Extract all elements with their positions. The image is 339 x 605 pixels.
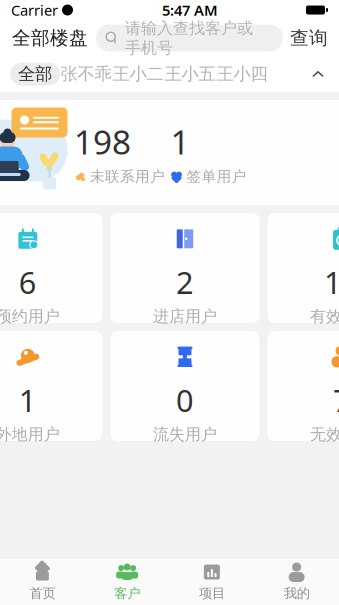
staticText: 无效用户 xyxy=(310,424,339,444)
staticText: 未联系用户 xyxy=(90,168,165,186)
button[interactable]: 请输入查找客户或手机号 xyxy=(96,24,283,51)
staticText: 1 xyxy=(19,380,37,420)
staticText: Carrier xyxy=(11,0,58,20)
staticText: 1 xyxy=(170,119,189,164)
staticText: 198 xyxy=(74,119,131,164)
staticText: 请输入查找客户或手机号 xyxy=(125,18,253,58)
button[interactable]: 查询 xyxy=(283,21,335,55)
button[interactable]: 我的 xyxy=(254,559,339,605)
button[interactable]: 全部 xyxy=(10,62,60,85)
staticText: 我的 xyxy=(284,585,310,601)
button[interactable]: 全部楼盘 xyxy=(4,21,96,55)
staticText: 王小四 xyxy=(216,63,267,85)
staticText: 全部楼盘 xyxy=(12,26,88,49)
staticText: 客户 xyxy=(114,585,140,601)
button[interactable]: 王小二 xyxy=(112,62,164,85)
button[interactable]: 19 xyxy=(267,213,339,323)
staticText: 全部 xyxy=(18,63,52,85)
button[interactable]: 7 xyxy=(267,331,339,441)
button[interactable]: 1 xyxy=(0,331,102,441)
button[interactable]: 2 xyxy=(110,213,259,323)
staticText: 签单用户 xyxy=(186,168,246,186)
button[interactable]: 6 xyxy=(0,213,102,323)
staticText: 张不乖 xyxy=(60,63,111,85)
staticText: 项目 xyxy=(199,585,225,601)
staticText: 0 xyxy=(176,380,194,420)
button[interactable]: 0 xyxy=(110,331,259,441)
staticText: 流失用户 xyxy=(153,424,217,444)
staticText: 7 xyxy=(333,380,339,420)
button[interactable]: 客户 xyxy=(85,559,170,605)
button[interactable]: 项目 xyxy=(169,559,254,605)
staticText: 19 xyxy=(324,262,339,302)
staticText: 外地用户 xyxy=(0,424,60,444)
button[interactable]: 王小四 xyxy=(216,62,268,85)
staticText: 首页 xyxy=(29,585,55,601)
staticText: 查询 xyxy=(290,26,328,49)
staticText: 5:47 AM xyxy=(162,0,218,20)
staticText: 王小五 xyxy=(164,63,215,85)
button[interactable]: 王小五 xyxy=(164,62,216,85)
staticText: 2 xyxy=(176,262,194,302)
button[interactable]: 收起 xyxy=(303,59,333,89)
staticText: 预约用户 xyxy=(0,306,60,326)
staticText: 6 xyxy=(19,262,37,302)
staticText: 有效用户 xyxy=(310,306,339,326)
button[interactable]: 张不乖 xyxy=(60,62,112,85)
button[interactable]: 首页 xyxy=(0,559,85,605)
staticText: 进店用户 xyxy=(153,306,217,326)
staticText: 王小二 xyxy=(112,63,163,85)
